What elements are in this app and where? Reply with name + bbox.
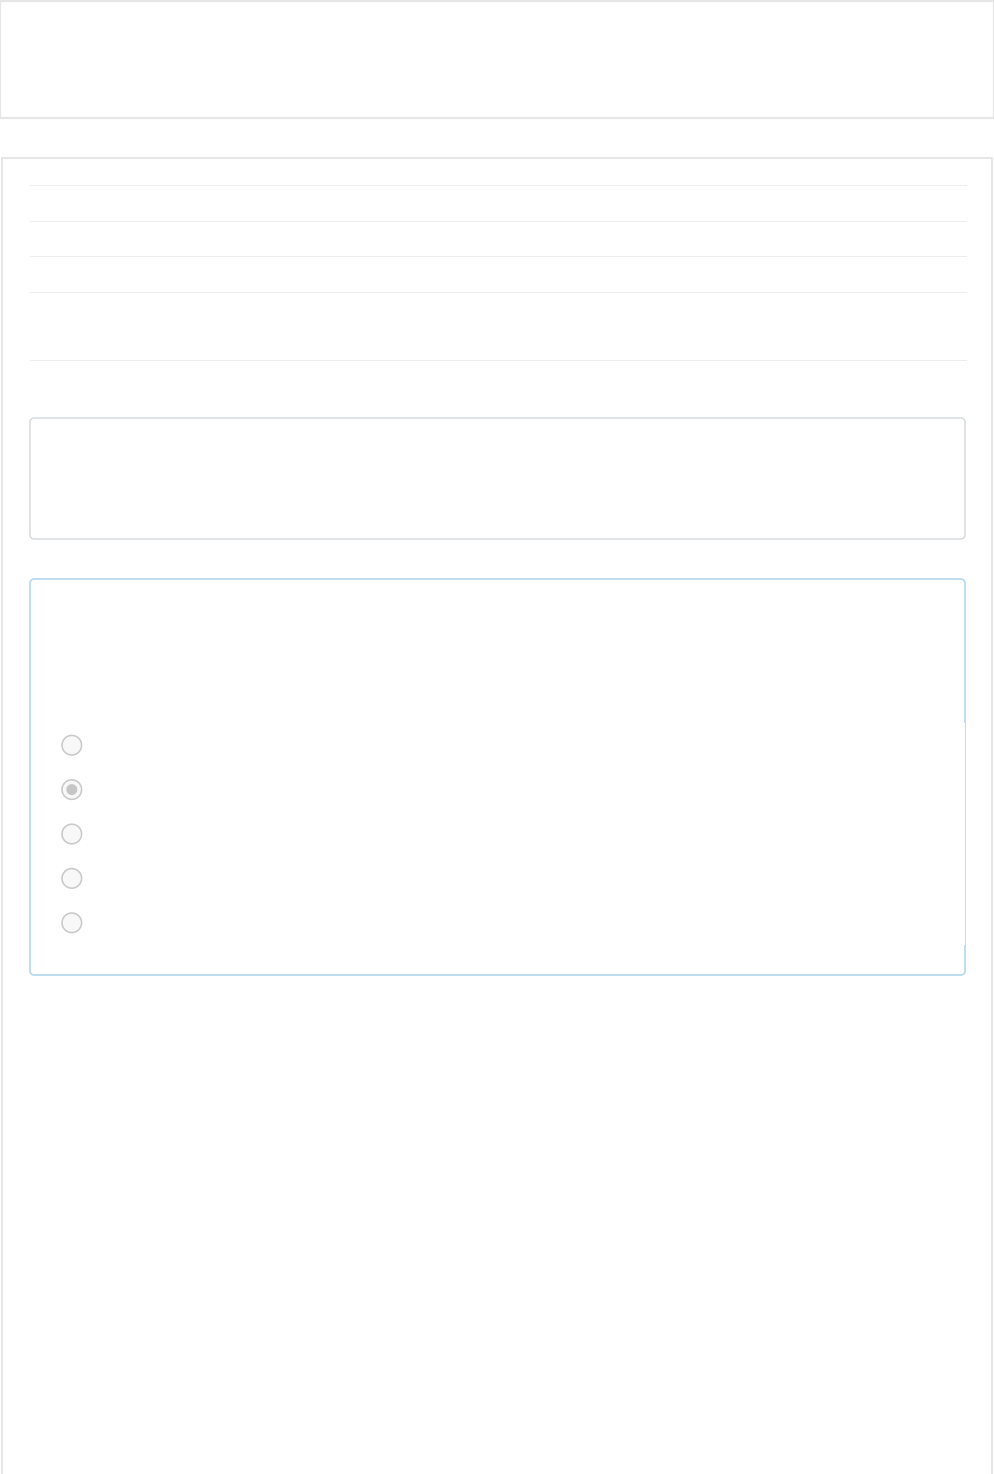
button[interactable]: Option 2: [62, 767, 965, 812]
button[interactable]: Your answer: [30, 418, 965, 539]
